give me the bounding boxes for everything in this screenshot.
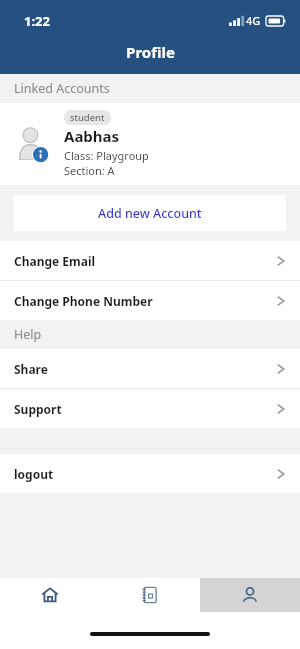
button[interactable]: Change Phone Number [0,281,300,320]
button[interactable]: Home [0,578,100,612]
staticText: Profile [126,42,175,62]
button[interactable]: Change Email [0,241,300,280]
staticText: Share [14,361,276,377]
button[interactable]: Share [0,349,300,388]
staticText: Linked Accounts [14,80,110,97]
button[interactable]: Add new Account [14,195,286,231]
staticText: Change Email [14,253,276,269]
button[interactable]: logout [0,454,300,493]
staticText: Help [14,326,42,343]
staticText: Section: A [64,163,115,178]
button[interactable]: Support [0,389,300,428]
staticText: Support [14,401,276,417]
staticText: Aabhas [64,126,120,146]
staticText: 4G [246,13,261,28]
staticText: 1:22 [24,12,50,30]
staticText: Change Phone Number [14,293,276,309]
staticText: logout [14,466,276,482]
button[interactable]: Diary [100,578,200,612]
staticText: Add new Account [98,205,202,222]
staticText: student [70,111,105,124]
staticText: Class: Playgroup [64,148,149,163]
button[interactable]: Profile [200,578,300,612]
button[interactable]: student [0,103,300,185]
